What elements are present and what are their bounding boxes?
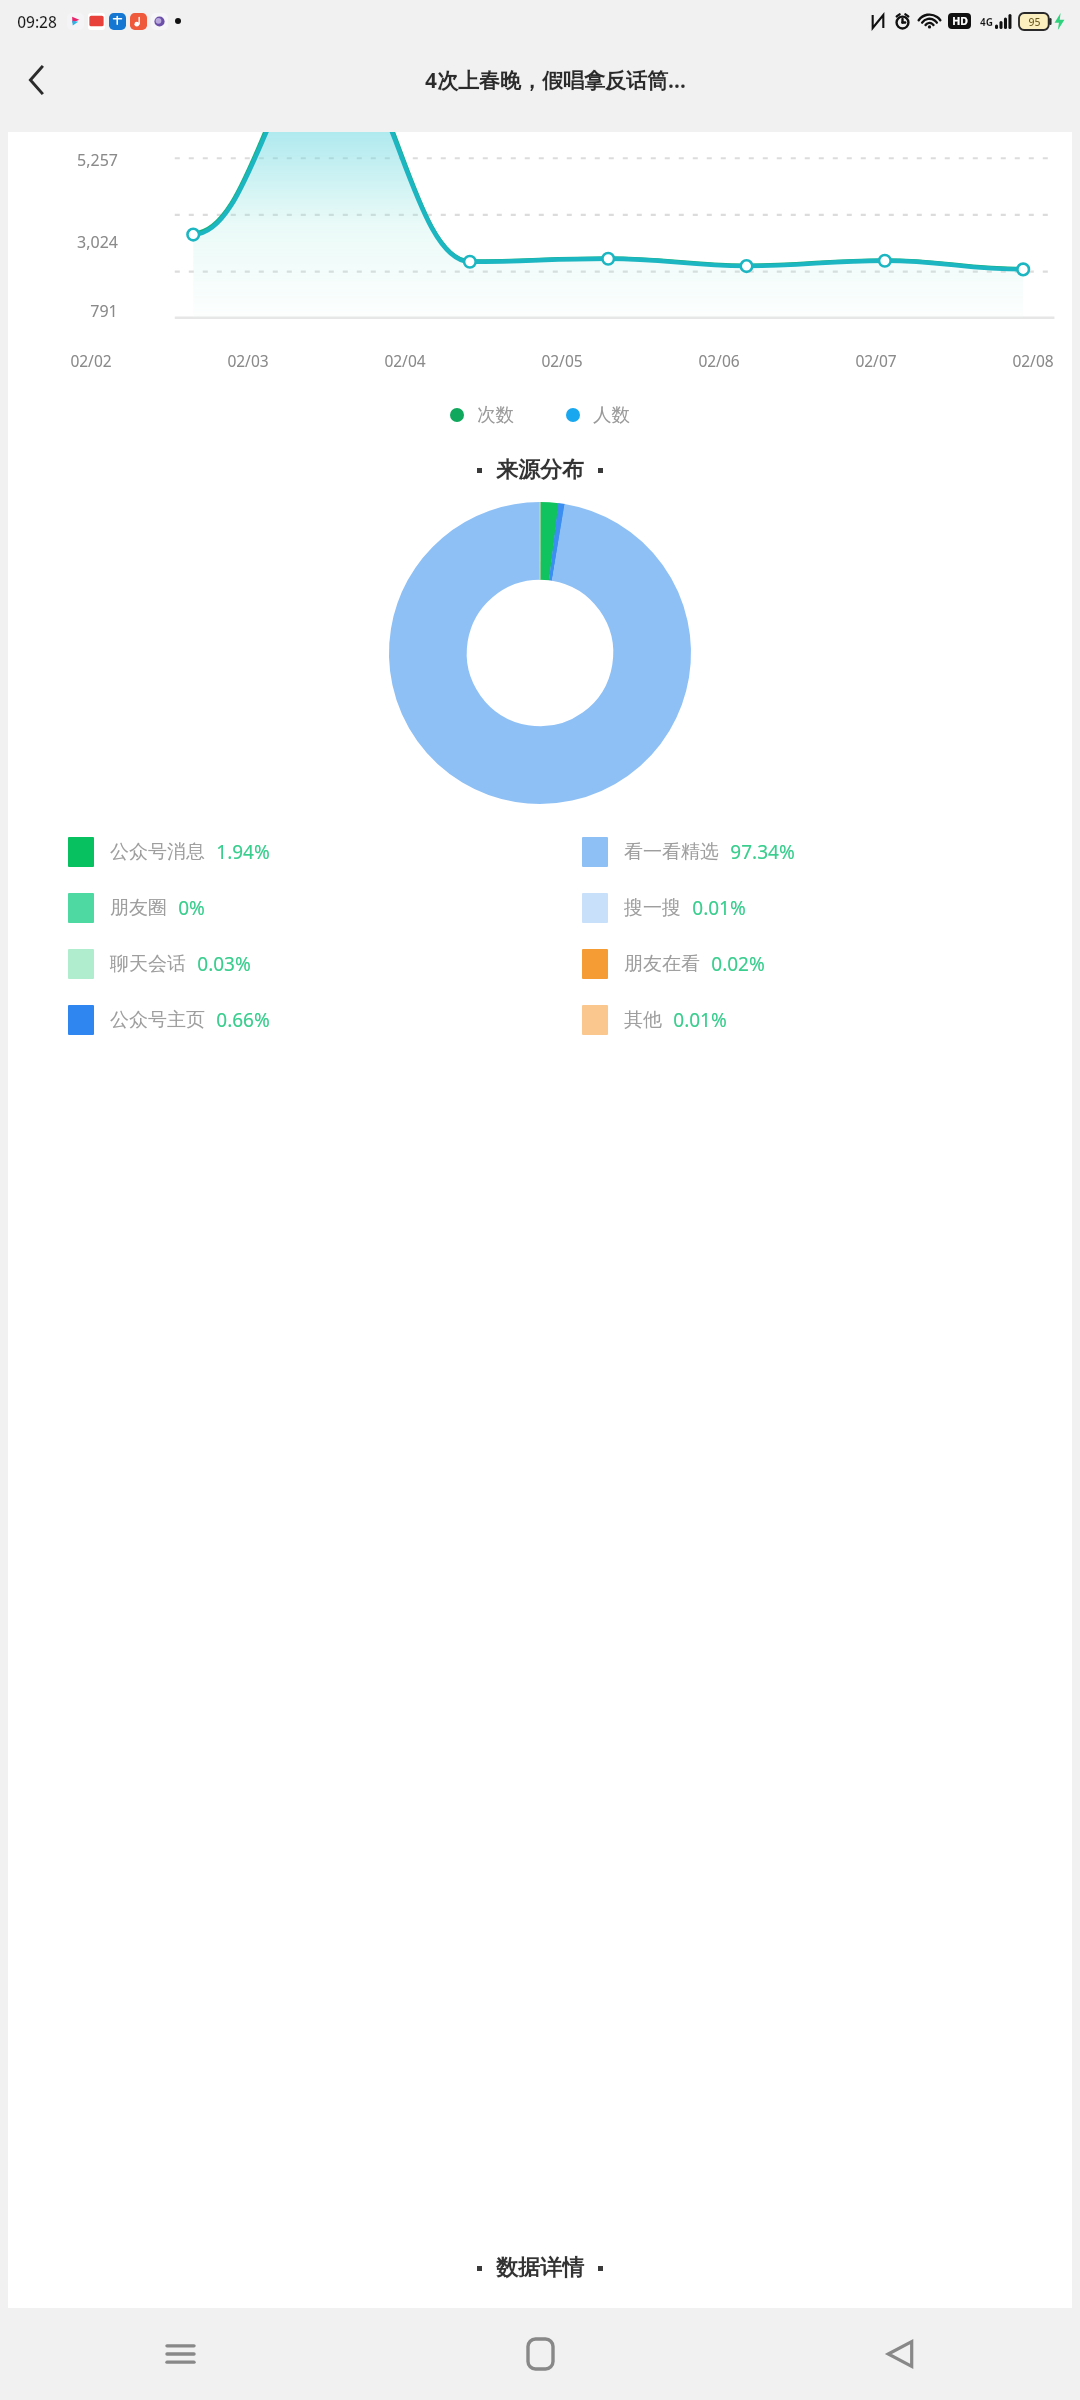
staticText: 5,257 xyxy=(77,149,118,171)
staticText: 02/05 xyxy=(541,350,583,371)
staticText: 搜一搜 xyxy=(624,896,681,920)
staticText: 来源分布 xyxy=(496,456,584,484)
button[interactable]: 公众号主页 xyxy=(26,992,540,1048)
staticText: 09:28 xyxy=(17,11,57,32)
button[interactable]: 人数 xyxy=(566,403,630,426)
staticText: 看一看精选 xyxy=(624,840,719,864)
staticText: 791 xyxy=(90,300,118,322)
button[interactable]: 看一看精选 xyxy=(540,824,1054,880)
staticText: 聊天会话 xyxy=(110,952,186,976)
button[interactable]: 聊天会话 xyxy=(26,936,540,992)
staticText: 次数 xyxy=(477,403,514,426)
staticText: 4G xyxy=(980,15,993,29)
staticText: 其他 xyxy=(624,1008,662,1032)
staticText: 数据详情 xyxy=(496,2254,584,2282)
button[interactable]: 公众号消息 xyxy=(26,824,540,880)
staticText: 朋友在看 xyxy=(624,952,700,976)
staticText: 02/04 xyxy=(384,350,426,371)
staticText: 人数 xyxy=(593,403,630,426)
button[interactable]: Back xyxy=(720,2308,1080,2400)
button[interactable]: Back xyxy=(8,52,64,108)
staticText: 97.34% xyxy=(730,839,795,865)
staticText: 3,024 xyxy=(77,231,118,253)
staticText: 0.02% xyxy=(711,951,765,977)
staticText: 1.94% xyxy=(216,839,270,865)
button[interactable]: 次数 xyxy=(450,403,514,426)
staticText: HD xyxy=(952,14,968,28)
staticText: 0.66% xyxy=(216,1007,270,1033)
staticText: 0.01% xyxy=(673,1007,727,1033)
staticText: 02/06 xyxy=(698,350,740,371)
staticText: 4次上春晚，假唱拿反话筒… xyxy=(425,66,686,95)
button[interactable]: 其他 xyxy=(540,992,1054,1048)
staticText: 0% xyxy=(178,895,205,921)
button[interactable]: Recent apps xyxy=(0,2308,360,2400)
staticText: 公众号消息 xyxy=(110,840,205,864)
staticText: 02/08 xyxy=(1012,350,1054,371)
staticText: 02/07 xyxy=(855,350,897,371)
staticText: 95 xyxy=(1028,15,1041,29)
staticText: 02/03 xyxy=(227,350,269,371)
button[interactable]: 朋友在看 xyxy=(540,936,1054,992)
staticText: 公众号主页 xyxy=(110,1008,205,1032)
button[interactable]: 朋友圈 xyxy=(26,880,540,936)
staticText: 0.01% xyxy=(692,895,746,921)
staticText: 0.03% xyxy=(197,951,251,977)
staticText: 02/02 xyxy=(70,350,112,371)
button[interactable]: Home xyxy=(360,2308,720,2400)
button[interactable]: 搜一搜 xyxy=(540,880,1054,936)
staticText: 朋友圈 xyxy=(110,896,167,920)
